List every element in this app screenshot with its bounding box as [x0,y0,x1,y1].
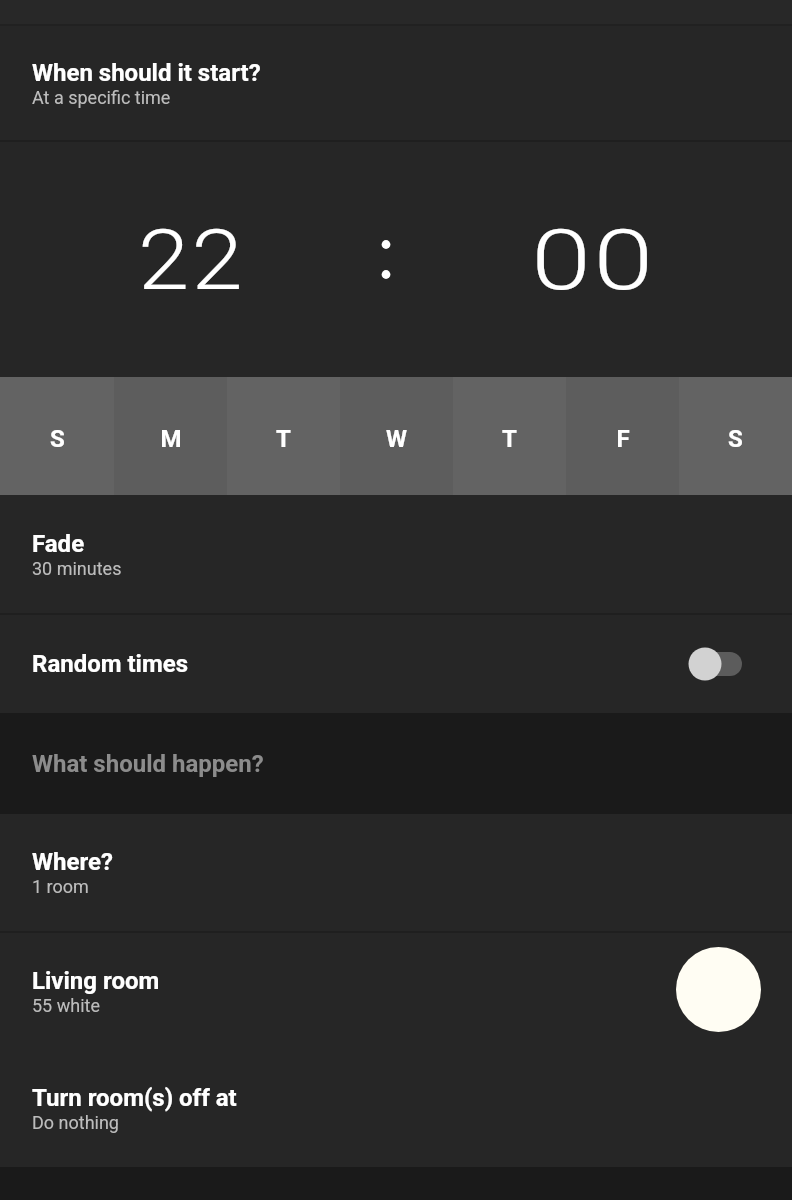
staticText: Fade [32,530,85,558]
button[interactable]: Monday [114,377,227,495]
staticText: 00 [531,211,657,309]
staticText: 22 [138,211,246,309]
button[interactable]: Saturday [679,377,792,495]
button[interactable]: Living room [0,933,792,1050]
button[interactable]: Friday [566,377,679,495]
button[interactable]: Wednesday [340,377,453,495]
staticText: 1 room [32,876,89,897]
staticText: T [502,425,517,453]
staticText: When should it start? [32,59,261,87]
button[interactable]: Thursday [453,377,566,495]
staticText: T [276,425,291,453]
button[interactable]: Where? [0,814,792,931]
button[interactable]: Fade [0,495,792,613]
staticText: Living room [32,967,160,995]
staticText: Where? [32,848,113,876]
staticText: F [616,425,630,453]
staticText: 55 white [32,995,100,1016]
button[interactable]: Sunday [0,377,114,495]
staticText: S [728,425,743,453]
button[interactable]: 22 [0,142,396,377]
button[interactable]: Light colour [676,947,761,1032]
button[interactable]: 00 [396,142,792,377]
staticText: At a specific time [32,87,171,108]
staticText: W [386,425,407,453]
button[interactable]: What should happen? [0,713,792,814]
staticText: Turn room(s) off at [32,1084,237,1112]
staticText: 30 minutes [32,558,122,579]
staticText: Random times [32,650,686,678]
button[interactable]: Random times toggle [686,642,760,686]
button[interactable]: Random times [0,615,792,713]
staticText: What should happen? [32,750,264,778]
button[interactable]: Turn room(s) off at [0,1050,792,1167]
button[interactable]: Tuesday [227,377,340,495]
staticText: S [50,425,65,453]
button[interactable]: When should it start? [0,26,792,140]
staticText: Do nothing [32,1112,119,1133]
staticText: M [160,425,182,453]
